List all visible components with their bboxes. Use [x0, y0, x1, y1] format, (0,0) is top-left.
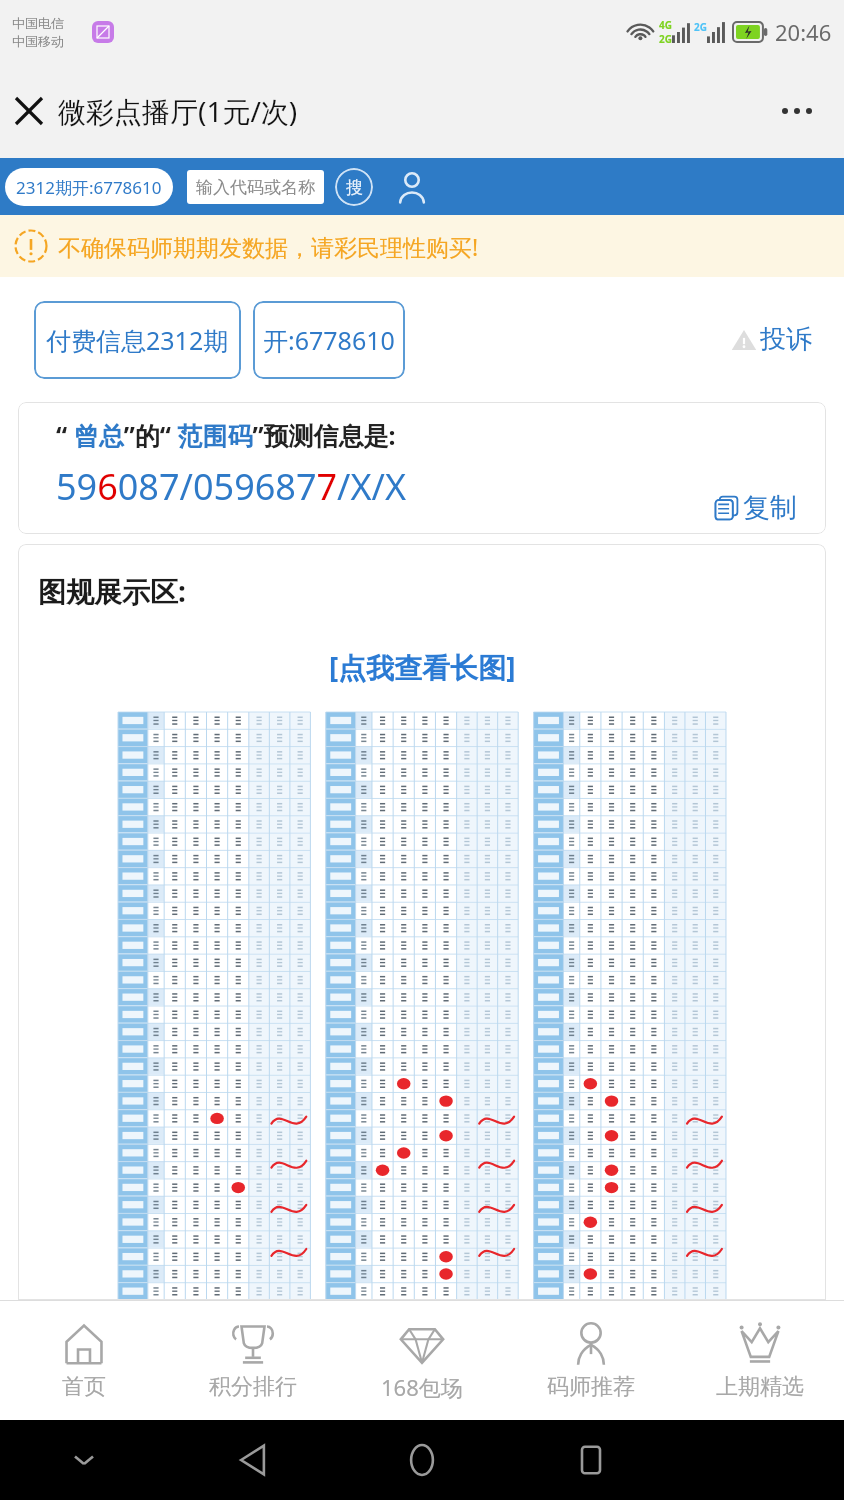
button[interactable]: 开:6778610	[253, 301, 405, 379]
staticText: [点我查看长图]	[329, 648, 516, 686]
staticText: 码师推荐	[547, 1373, 635, 1401]
button[interactable]: 首页	[0, 1301, 168, 1420]
staticText: 输入代码或名称	[196, 177, 315, 198]
button[interactable]: 2312期开:6778610	[5, 168, 173, 206]
button[interactable]: Search	[333, 166, 375, 208]
staticText: 积分排行	[209, 1373, 297, 1401]
staticText: 20:46	[775, 17, 832, 47]
button[interactable]: [点我查看长图]	[325, 644, 520, 690]
staticText: 投诉	[760, 323, 812, 356]
staticText: 4G	[659, 18, 672, 32]
button[interactable]: 上期精选	[675, 1301, 844, 1420]
staticText: 搜	[346, 177, 363, 198]
staticText: 付费信息2312期	[46, 323, 229, 357]
button[interactable]: “ 曾总”的“ 范围码”预测信息是:	[18, 402, 826, 534]
staticText: 不确保码师期期发数据，请彩民理性购买!	[58, 231, 479, 262]
button[interactable]: Close	[0, 82, 58, 140]
staticText: 微彩点播厅(1元/次)	[58, 92, 298, 130]
button[interactable]: 积分排行	[168, 1301, 337, 1420]
button[interactable]: More options	[768, 82, 826, 140]
button[interactable]: Account	[389, 164, 435, 210]
staticText: 上期精选	[716, 1373, 804, 1401]
staticText: 首页	[62, 1373, 106, 1401]
button[interactable]: 复制	[711, 488, 800, 528]
button[interactable]: Hide keyboard	[0, 1420, 168, 1500]
button[interactable]: 168包场	[337, 1301, 506, 1420]
staticText: 168包场	[381, 1372, 463, 1402]
staticText: 中国电信	[12, 15, 64, 31]
staticText: 中国移动	[12, 33, 64, 49]
button[interactable]: Recent apps	[506, 1420, 675, 1500]
button[interactable]: 码师推荐	[506, 1301, 675, 1420]
staticText: 2G	[694, 20, 707, 34]
staticText: 图规展示区:	[38, 572, 186, 610]
staticText: 596087/0596877/X/X	[56, 462, 407, 511]
staticText: 2G	[659, 32, 672, 46]
staticText: 复制	[743, 491, 797, 525]
button[interactable]: Home	[337, 1420, 506, 1500]
button[interactable]: 投诉	[727, 319, 816, 360]
staticText: 开:6778610	[263, 323, 395, 357]
button[interactable]: 付费信息2312期	[34, 301, 241, 379]
button[interactable]: 输入代码或名称	[187, 170, 324, 204]
staticText: “ 曾总”的“ 范围码”预测信息是:	[56, 418, 396, 452]
staticText: 2312期开:6778610	[16, 176, 162, 199]
button[interactable]: Back	[168, 1420, 337, 1500]
